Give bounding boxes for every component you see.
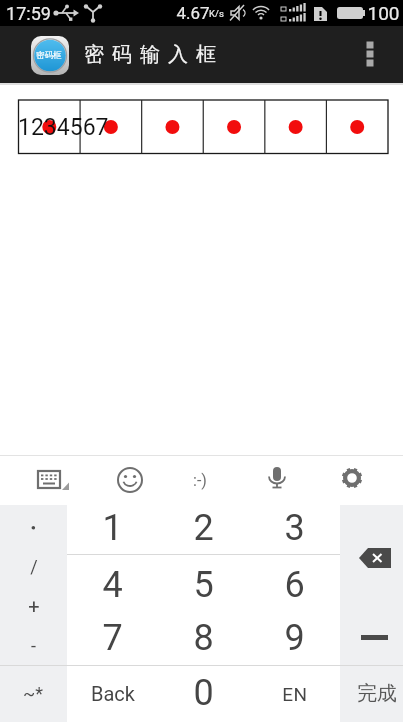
button[interactable]: + bbox=[0, 586, 67, 624]
staticText: 4.67 bbox=[176, 3, 210, 23]
staticText: · bbox=[30, 514, 37, 542]
staticText: 0 bbox=[193, 672, 214, 714]
button[interactable] bbox=[346, 610, 403, 665]
staticText: 8 bbox=[193, 617, 214, 659]
staticText: 4 bbox=[102, 564, 123, 606]
staticText: Back bbox=[91, 682, 135, 705]
staticText: 1 bbox=[102, 507, 123, 549]
button[interactable] bbox=[27, 455, 77, 505]
button[interactable] bbox=[346, 505, 403, 610]
staticText: 密码框 bbox=[36, 50, 62, 61]
staticText: EN bbox=[282, 683, 308, 705]
button[interactable]: Back bbox=[67, 665, 158, 721]
staticText: 7 bbox=[102, 617, 123, 659]
button[interactable]: 8 bbox=[158, 611, 249, 665]
button[interactable]: 3 bbox=[249, 501, 340, 555]
button[interactable]: 1 bbox=[67, 501, 158, 555]
staticText: / bbox=[30, 556, 38, 577]
staticText: 3 bbox=[284, 507, 305, 549]
button[interactable]: 0 bbox=[158, 665, 249, 721]
button[interactable]: - bbox=[0, 626, 67, 664]
button[interactable]: 1234567 bbox=[18, 100, 138, 154]
button[interactable]: 4 bbox=[67, 558, 158, 612]
staticText: 完成 bbox=[357, 681, 397, 706]
button[interactable]: ~* bbox=[0, 668, 66, 718]
button[interactable]: · bbox=[0, 509, 67, 547]
staticText: 5 bbox=[193, 564, 214, 606]
staticText: + bbox=[28, 594, 40, 617]
button[interactable] bbox=[360, 38, 380, 72]
button[interactable]: / bbox=[0, 547, 67, 585]
button[interactable]: :-) bbox=[160, 455, 240, 505]
staticText: 6 bbox=[284, 564, 305, 606]
button[interactable]: 6 bbox=[249, 558, 340, 612]
staticText: - bbox=[31, 635, 36, 656]
button[interactable] bbox=[105, 455, 155, 505]
button[interactable] bbox=[252, 455, 302, 505]
staticText: ~* bbox=[23, 683, 43, 704]
button[interactable]: 7 bbox=[67, 611, 158, 665]
button[interactable]: 9 bbox=[249, 611, 340, 665]
staticText: 17:59 bbox=[6, 3, 51, 24]
staticText: 密码输入框 bbox=[80, 42, 220, 67]
button[interactable] bbox=[327, 455, 377, 505]
staticText: K/s bbox=[209, 8, 224, 19]
staticText: :-) bbox=[193, 471, 207, 490]
staticText: 100 bbox=[367, 2, 400, 24]
button[interactable]: 完成 bbox=[345, 665, 403, 721]
button[interactable]: EN bbox=[249, 666, 340, 722]
staticText: 9 bbox=[284, 617, 305, 659]
button[interactable]: 2 bbox=[158, 501, 249, 555]
staticText: 2 bbox=[193, 507, 214, 549]
staticText: 1234567 bbox=[18, 114, 109, 141]
button[interactable]: 5 bbox=[158, 558, 249, 612]
